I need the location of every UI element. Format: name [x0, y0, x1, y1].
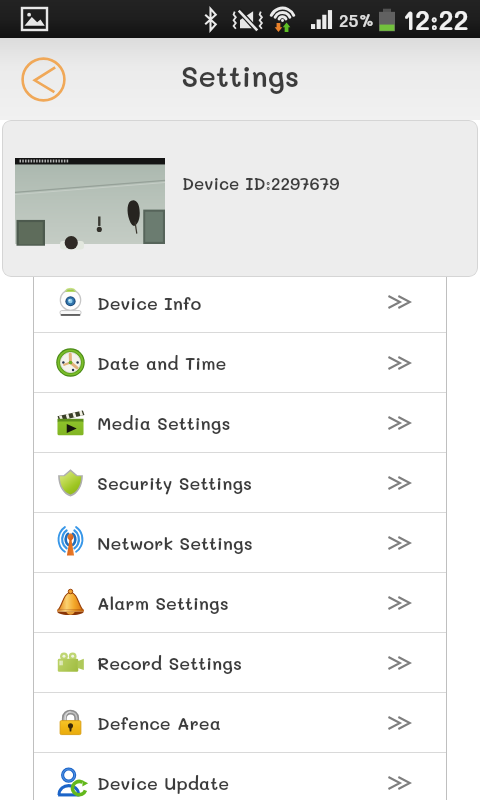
- button[interactable]: Security Settings: [34, 453, 446, 512]
- button[interactable]: Alarm Settings: [34, 573, 446, 632]
- staticText: Media Settings: [97, 411, 231, 434]
- staticText: Date and Time: [97, 351, 227, 374]
- staticText: Security Settings: [97, 471, 253, 494]
- staticText: Record Settings: [97, 651, 242, 674]
- staticText: Device Info: [97, 291, 202, 314]
- button[interactable]: Date and Time: [34, 333, 446, 392]
- staticText: Device Update: [97, 771, 230, 794]
- button[interactable]: Device ID:2297679: [2, 120, 478, 277]
- button[interactable]: Device Info: [34, 272, 446, 332]
- button[interactable]: Defence Area: [34, 693, 446, 752]
- staticText: 25%: [339, 9, 375, 31]
- button[interactable]: Media Settings: [34, 393, 446, 452]
- staticText: Alarm Settings: [97, 591, 229, 614]
- button[interactable]: Record Settings: [34, 633, 446, 692]
- staticText: Settings: [181, 57, 300, 95]
- button[interactable]: Device Update: [34, 753, 446, 800]
- staticText: 12:22: [403, 2, 469, 37]
- button[interactable]: Back: [17, 53, 69, 105]
- staticText: Network Settings: [97, 531, 253, 554]
- staticText: Defence Area: [97, 711, 221, 734]
- staticText: Device ID:2297679: [182, 172, 340, 194]
- button[interactable]: Network Settings: [34, 513, 446, 572]
